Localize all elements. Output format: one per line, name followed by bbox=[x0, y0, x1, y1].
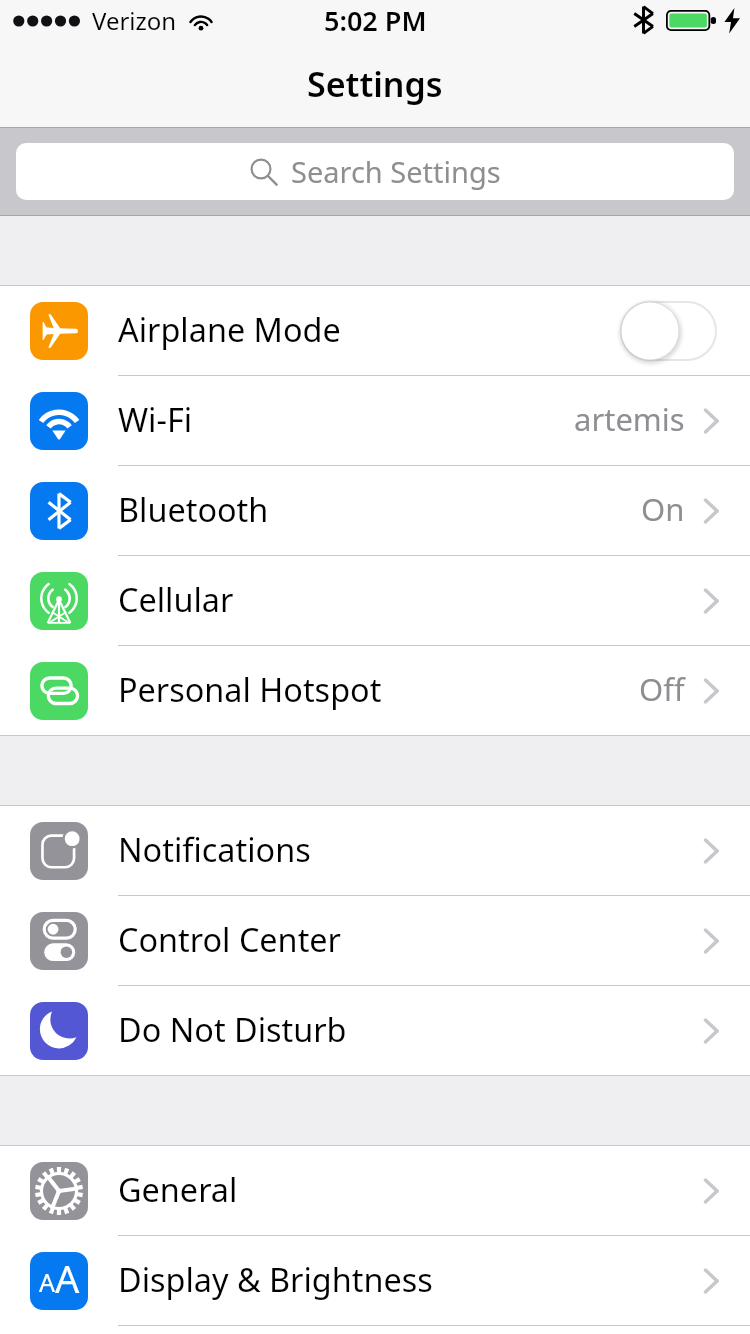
staticText: Control Center bbox=[118, 917, 341, 961]
button[interactable]: Wi-Fi bbox=[0, 376, 750, 465]
staticText: Off bbox=[639, 668, 685, 710]
staticText: 5:02 PM bbox=[324, 2, 427, 39]
button[interactable]: Search Settings bbox=[16, 143, 734, 200]
staticText: A bbox=[55, 1252, 80, 1302]
staticText: Verizon bbox=[92, 4, 177, 37]
button[interactable]: A bbox=[0, 1236, 750, 1325]
staticText: Personal Hotspot bbox=[118, 667, 382, 711]
button[interactable]: General bbox=[0, 1146, 750, 1235]
button[interactable]: Bluetooth bbox=[0, 466, 750, 555]
button[interactable]: Cellular bbox=[0, 556, 750, 645]
button[interactable]: Control Center bbox=[0, 896, 750, 985]
staticText: Wi-Fi bbox=[118, 397, 193, 441]
button[interactable]: Do Not Disturb bbox=[0, 986, 750, 1075]
staticText: General bbox=[118, 1167, 238, 1211]
staticText: A bbox=[39, 1265, 55, 1299]
button[interactable]: Personal Hotspot bbox=[0, 646, 750, 735]
staticText: Settings bbox=[307, 61, 443, 107]
button[interactable]: Airplane Mode bbox=[0, 286, 750, 375]
staticText: Search Settings bbox=[291, 152, 501, 191]
staticText: Display & Brightness bbox=[118, 1257, 433, 1301]
staticText: Do Not Disturb bbox=[118, 1007, 347, 1051]
staticText: Cellular bbox=[118, 577, 234, 621]
staticText: Bluetooth bbox=[118, 487, 269, 531]
staticText: Airplane Mode bbox=[118, 307, 341, 351]
staticText: artemis bbox=[574, 398, 685, 440]
staticText: Notifications bbox=[118, 827, 311, 871]
staticText: On bbox=[641, 488, 685, 530]
button[interactable]: Notifications bbox=[0, 806, 750, 895]
